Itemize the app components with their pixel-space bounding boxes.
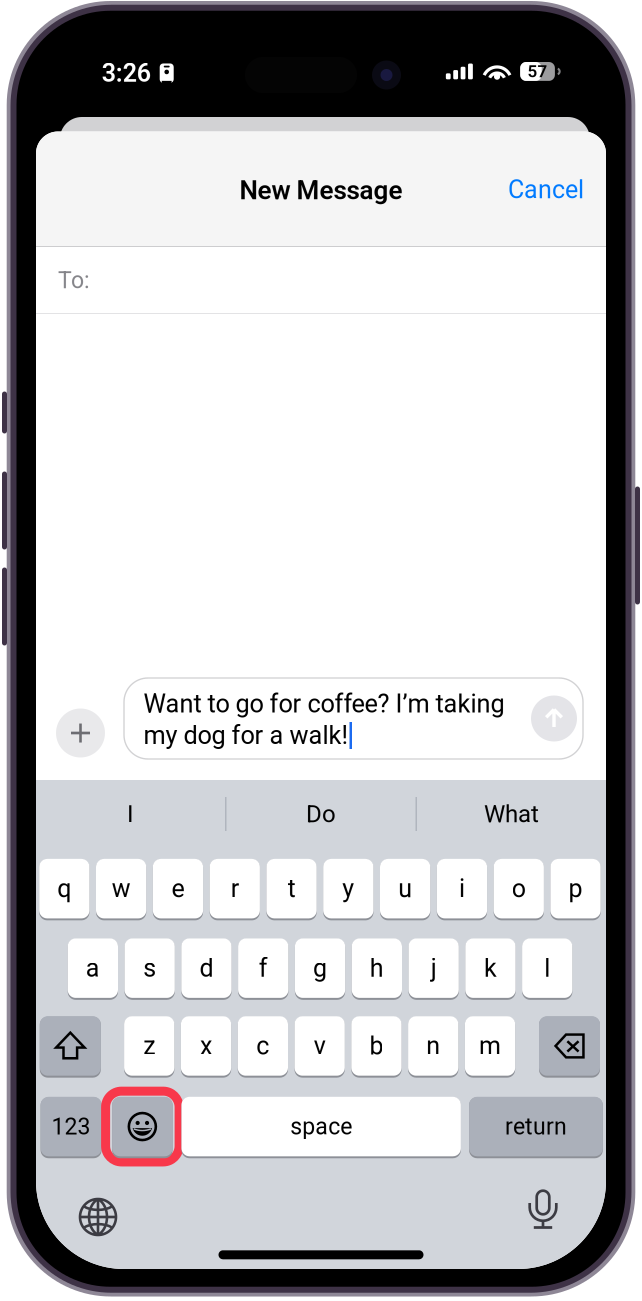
- staticText: 57: [527, 61, 547, 81]
- button[interactable]: o: [494, 857, 544, 920]
- staticText: n: [426, 1031, 440, 1061]
- button[interactable]: c: [238, 1015, 288, 1077]
- button[interactable]: I: [36, 780, 225, 848]
- staticText: 123: [52, 1113, 91, 1140]
- button[interactable]: Next keyboard: [65, 1184, 131, 1250]
- button[interactable]: Emoji keyboard: [112, 1095, 173, 1158]
- button[interactable]: e: [153, 857, 203, 920]
- button[interactable]: Send: [530, 694, 578, 742]
- button[interactable]: g: [295, 937, 345, 999]
- button[interactable]: u: [380, 857, 430, 920]
- staticText: I: [127, 800, 134, 828]
- button[interactable]: h: [352, 937, 402, 999]
- button[interactable]: r: [210, 857, 260, 920]
- button[interactable]: Add attachment: [54, 707, 106, 759]
- staticText: h: [370, 953, 384, 983]
- staticText: j: [431, 953, 437, 983]
- staticText: k: [484, 953, 497, 983]
- staticText: z: [143, 1031, 155, 1061]
- staticText: a: [86, 953, 100, 983]
- button[interactable]: return: [469, 1095, 603, 1158]
- staticText: m: [479, 1031, 501, 1061]
- staticText: New Message: [239, 175, 402, 205]
- staticText: w: [112, 874, 131, 903]
- staticText: f: [259, 953, 268, 983]
- staticText: Want to go for coffee? I’m taking: [143, 689, 504, 719]
- staticText: Cancel: [508, 175, 584, 204]
- staticText: l: [544, 953, 550, 983]
- button[interactable]: b: [351, 1015, 402, 1077]
- staticText: v: [314, 1031, 326, 1061]
- button[interactable]: a: [68, 937, 118, 999]
- staticText: u: [398, 874, 412, 903]
- button[interactable]: 123: [41, 1095, 102, 1158]
- staticText: p: [569, 874, 583, 903]
- button[interactable]: k: [465, 937, 516, 999]
- button[interactable]: j: [408, 937, 459, 999]
- button[interactable]: What: [417, 780, 606, 848]
- staticText: c: [256, 1031, 269, 1061]
- button[interactable]: m: [465, 1015, 515, 1077]
- button[interactable]: w: [96, 857, 146, 920]
- staticText: What: [484, 800, 539, 828]
- button[interactable]: x: [181, 1015, 231, 1077]
- button[interactable]: q: [39, 857, 89, 920]
- button[interactable]: z: [124, 1015, 174, 1077]
- staticText: q: [57, 874, 71, 903]
- staticText: s: [143, 953, 156, 983]
- staticText: return: [505, 1113, 567, 1140]
- button[interactable]: t: [266, 857, 317, 920]
- button[interactable]: v: [294, 1015, 345, 1077]
- staticText: y: [342, 874, 354, 903]
- staticText: space: [290, 1113, 352, 1140]
- button[interactable]: s: [124, 937, 175, 999]
- button[interactable]: space: [181, 1095, 461, 1158]
- button[interactable]: d: [181, 937, 232, 999]
- staticText: Do: [306, 800, 336, 828]
- staticText: r: [231, 874, 239, 903]
- button[interactable]: l: [522, 937, 572, 999]
- staticText: t: [287, 874, 295, 903]
- button[interactable]: y: [323, 857, 373, 920]
- button[interactable]: Cancel: [486, 163, 606, 216]
- button[interactable]: f: [238, 937, 288, 999]
- button[interactable]: Do: [226, 780, 416, 848]
- button[interactable]: Delete: [539, 1015, 600, 1077]
- staticText: o: [512, 874, 526, 903]
- staticText: e: [171, 874, 184, 903]
- button[interactable]: p: [550, 857, 601, 920]
- staticText: 3:26: [102, 58, 151, 88]
- staticText: b: [369, 1031, 383, 1061]
- staticText: g: [313, 953, 327, 983]
- staticText: my dog for a walk!: [143, 721, 348, 750]
- staticText: To:: [58, 267, 90, 294]
- staticText: i: [459, 874, 465, 903]
- staticText: d: [199, 953, 213, 983]
- button[interactable]: i: [437, 857, 487, 920]
- staticText: x: [200, 1031, 212, 1061]
- button[interactable]: Shift: [40, 1015, 101, 1077]
- button[interactable]: n: [408, 1015, 458, 1077]
- button[interactable]: Dictate: [515, 1175, 570, 1243]
